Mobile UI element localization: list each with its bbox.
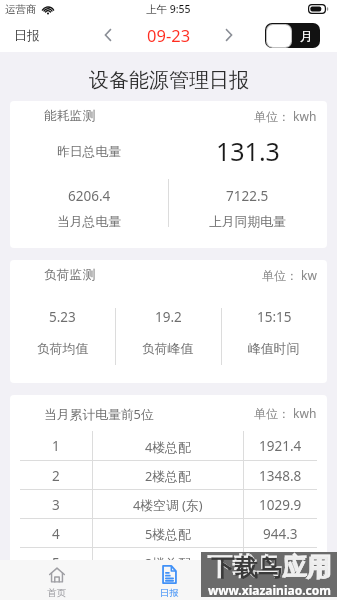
staticText: 设备能源管理日报 (89, 68, 249, 93)
staticText: 下载鸟应用 (207, 551, 332, 582)
button[interactable]: Next day (214, 20, 244, 50)
staticText: 1921.4 (259, 437, 302, 455)
staticText: 2 (52, 467, 60, 485)
staticText: 单位： kwh (254, 405, 317, 421)
staticText: www.xiazainiao.com (208, 582, 331, 596)
staticText: 4 (52, 525, 60, 543)
staticText: 2楼总配 (145, 467, 191, 484)
staticText: 能耗监测 (44, 108, 96, 124)
staticText: 7122.5 (226, 187, 269, 205)
staticText: 5楼总配 (145, 525, 191, 542)
button[interactable]: 首页 (0, 560, 113, 600)
staticText: 801.2 (263, 554, 298, 572)
staticText: 我的 (272, 587, 291, 599)
staticText: 6206.4 (68, 187, 111, 205)
staticText: 19.2 (155, 308, 182, 326)
staticText: 3楼总配 (145, 554, 191, 571)
button[interactable]: 我的 (225, 560, 337, 600)
staticText: 昨日总电量 (57, 144, 121, 160)
staticText: 4楼空调 (东) (133, 496, 203, 513)
staticText: 负荷峰值 (142, 341, 194, 357)
button[interactable]: 日报 (113, 560, 225, 600)
button[interactable]: 3 (20, 490, 317, 519)
button[interactable]: 4 (20, 519, 317, 548)
staticText: 负荷监测 (44, 267, 96, 283)
staticText: 1348.8 (259, 467, 302, 485)
staticText: 运营商 (5, 3, 37, 16)
button[interactable]: Switch to month view (265, 23, 320, 48)
staticText: 1029.9 (259, 496, 302, 514)
staticText: 3 (52, 496, 60, 514)
staticText: 1 (52, 437, 60, 455)
button[interactable]: Previous day (93, 20, 123, 50)
staticText: 上月同期电量 (209, 214, 286, 230)
staticText: 09-23 (147, 24, 191, 46)
button[interactable]: 2 (20, 461, 317, 490)
staticText: 15:15 (257, 308, 292, 326)
staticText: 单位： kw (262, 267, 317, 283)
staticText: 下载鸟 (211, 553, 282, 583)
staticText: 应用 (282, 553, 329, 583)
staticText: 当月累计电量前5位 (44, 405, 154, 422)
staticText: 4楼总配 (145, 438, 191, 455)
staticText: 上午 9:55 (146, 2, 191, 16)
staticText: 5 (52, 554, 60, 572)
staticText: 5.23 (49, 308, 76, 326)
staticText: 当月总电量 (57, 214, 121, 230)
staticText: 峰值时间 (248, 341, 300, 357)
staticText: 131.3 (216, 134, 280, 168)
button[interactable]: 1 (20, 431, 317, 461)
staticText: 月 (300, 28, 313, 44)
staticText: 首页 (47, 587, 66, 599)
staticText: 944.3 (263, 525, 298, 543)
staticText: 日报 (160, 587, 179, 599)
staticText: 负荷均值 (37, 341, 89, 357)
button[interactable]: 日报 (14, 20, 40, 50)
staticText: 单位： kwh (254, 108, 317, 124)
button[interactable]: 5 (20, 548, 317, 577)
staticText: 日报 (14, 27, 40, 43)
